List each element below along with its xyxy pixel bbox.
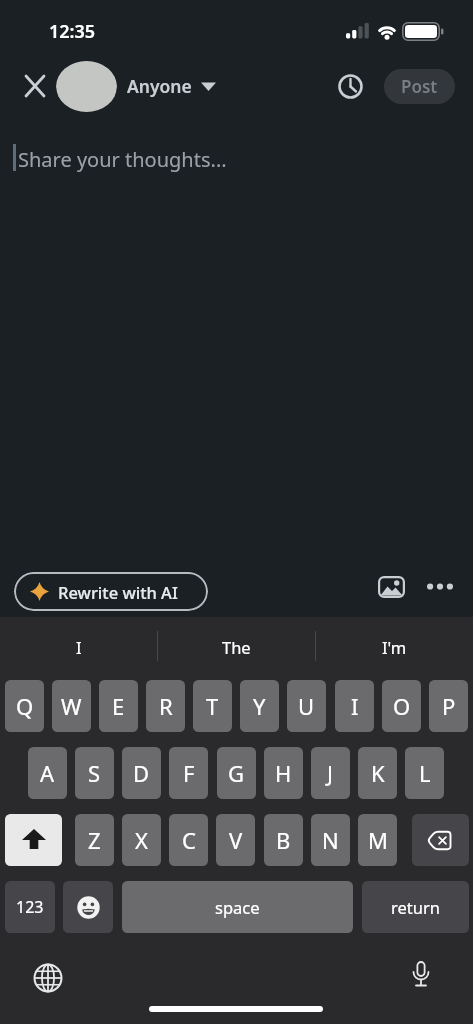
button[interactable]: T <box>193 680 232 732</box>
staticText: Rewrite with AI <box>58 581 178 603</box>
staticText: 123 <box>16 896 44 918</box>
staticText: B <box>276 825 291 855</box>
button[interactable]: I <box>0 634 157 660</box>
button[interactable]: Z <box>75 814 114 866</box>
staticText: C <box>182 825 196 855</box>
staticText: L <box>419 758 431 788</box>
button[interactable]: A <box>28 747 67 799</box>
button[interactable]: N <box>311 814 350 866</box>
button[interactable] <box>63 881 113 933</box>
button[interactable]: I'm <box>316 634 473 660</box>
staticText: W <box>61 691 82 721</box>
button[interactable]: K <box>358 747 397 799</box>
staticText: Share your thoughts... <box>18 146 227 173</box>
button[interactable] <box>371 568 411 606</box>
button[interactable]: M <box>358 814 397 866</box>
button[interactable]: Anyone <box>127 74 216 98</box>
button[interactable] <box>17 68 53 104</box>
button[interactable]: B <box>264 814 303 866</box>
button[interactable]: F <box>169 747 208 799</box>
button[interactable]: L <box>405 747 444 799</box>
button[interactable] <box>333 69 368 104</box>
staticText: space <box>215 896 260 918</box>
staticText: U <box>298 691 315 721</box>
staticText: Post <box>401 75 438 98</box>
staticText: E <box>112 691 125 721</box>
button[interactable]: H <box>264 747 303 799</box>
staticText: I <box>76 636 82 658</box>
staticText: 12:35 <box>49 19 96 44</box>
button[interactable]: R <box>146 680 185 732</box>
button[interactable]: Q <box>5 680 44 732</box>
staticText: A <box>40 758 55 788</box>
staticText: V <box>229 825 243 855</box>
button[interactable]: V <box>216 814 255 866</box>
staticText: I <box>351 691 359 721</box>
button[interactable] <box>56 61 117 112</box>
staticText: Y <box>253 691 266 721</box>
staticText: T <box>206 691 219 721</box>
button[interactable]: return <box>362 881 469 933</box>
staticText: X <box>135 825 148 855</box>
staticText: G <box>228 758 245 788</box>
staticText: Anyone <box>127 74 192 98</box>
staticText: The <box>222 636 251 658</box>
staticText: return <box>391 896 440 918</box>
button[interactable]: Rewrite with AI <box>14 572 208 611</box>
button[interactable] <box>420 572 460 600</box>
button[interactable]: E <box>99 680 138 732</box>
button[interactable] <box>5 814 62 866</box>
button[interactable]: P <box>429 680 468 732</box>
staticText: O <box>393 691 411 721</box>
button[interactable]: The <box>158 634 315 660</box>
staticText: S <box>88 758 101 788</box>
button[interactable]: Y <box>240 680 279 732</box>
staticText: R <box>159 691 173 721</box>
staticText: Q <box>16 691 34 721</box>
button[interactable]: 123 <box>5 881 55 933</box>
button[interactable]: J <box>311 747 350 799</box>
button[interactable] <box>401 955 441 999</box>
staticText: D <box>133 758 150 788</box>
staticText: F <box>183 758 195 788</box>
button[interactable]: O <box>382 680 421 732</box>
staticText: P <box>442 691 456 721</box>
staticText: Z <box>88 825 101 855</box>
staticText: M <box>368 825 388 855</box>
staticText: H <box>275 758 292 788</box>
button[interactable]: W <box>52 680 91 732</box>
button[interactable]: Post <box>384 69 455 104</box>
staticText: K <box>371 758 385 788</box>
button[interactable]: S <box>75 747 114 799</box>
button[interactable]: I <box>335 680 374 732</box>
button[interactable]: space <box>122 881 353 933</box>
button[interactable] <box>28 958 68 998</box>
staticText: I'm <box>382 636 407 658</box>
staticText: N <box>322 825 339 855</box>
button[interactable] <box>412 814 469 866</box>
button[interactable]: U <box>287 680 326 732</box>
button[interactable]: D <box>122 747 161 799</box>
button[interactable]: X <box>122 814 161 866</box>
staticText: J <box>327 758 334 788</box>
button[interactable]: G <box>217 747 256 799</box>
button[interactable]: C <box>169 814 208 866</box>
